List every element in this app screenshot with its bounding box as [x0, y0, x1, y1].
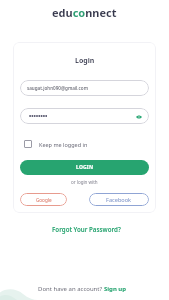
staticText: Login: [75, 56, 95, 66]
staticText: educonnect: [52, 5, 117, 20]
button[interactable]: Forgot Your Password?: [52, 225, 121, 233]
button[interactable]: LOGIN: [20, 160, 149, 175]
staticText: Dont have an account?: [38, 285, 104, 293]
staticText: Facebook: [106, 196, 132, 204]
button[interactable]: Keep me logged in: [24, 138, 88, 150]
button[interactable]: Facebook: [89, 193, 149, 206]
staticText: Keep me logged in: [39, 141, 88, 148]
button[interactable]: saugat.john090@gmail.com: [20, 80, 149, 96]
button[interactable]: Google: [20, 193, 67, 206]
staticText: saugat.john090@gmail.com: [27, 85, 89, 91]
staticText: or login with: [71, 179, 98, 185]
staticText: LOGIN: [76, 164, 94, 171]
button[interactable]: Show password: [133, 111, 144, 122]
button[interactable]: Show password: [20, 108, 149, 124]
button[interactable]: Sign up: [104, 285, 127, 293]
staticText: Google: [36, 197, 52, 203]
